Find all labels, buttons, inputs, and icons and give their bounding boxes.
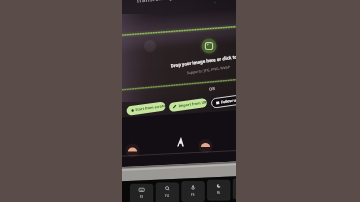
button[interactable] — [0, 0, 360, 202]
